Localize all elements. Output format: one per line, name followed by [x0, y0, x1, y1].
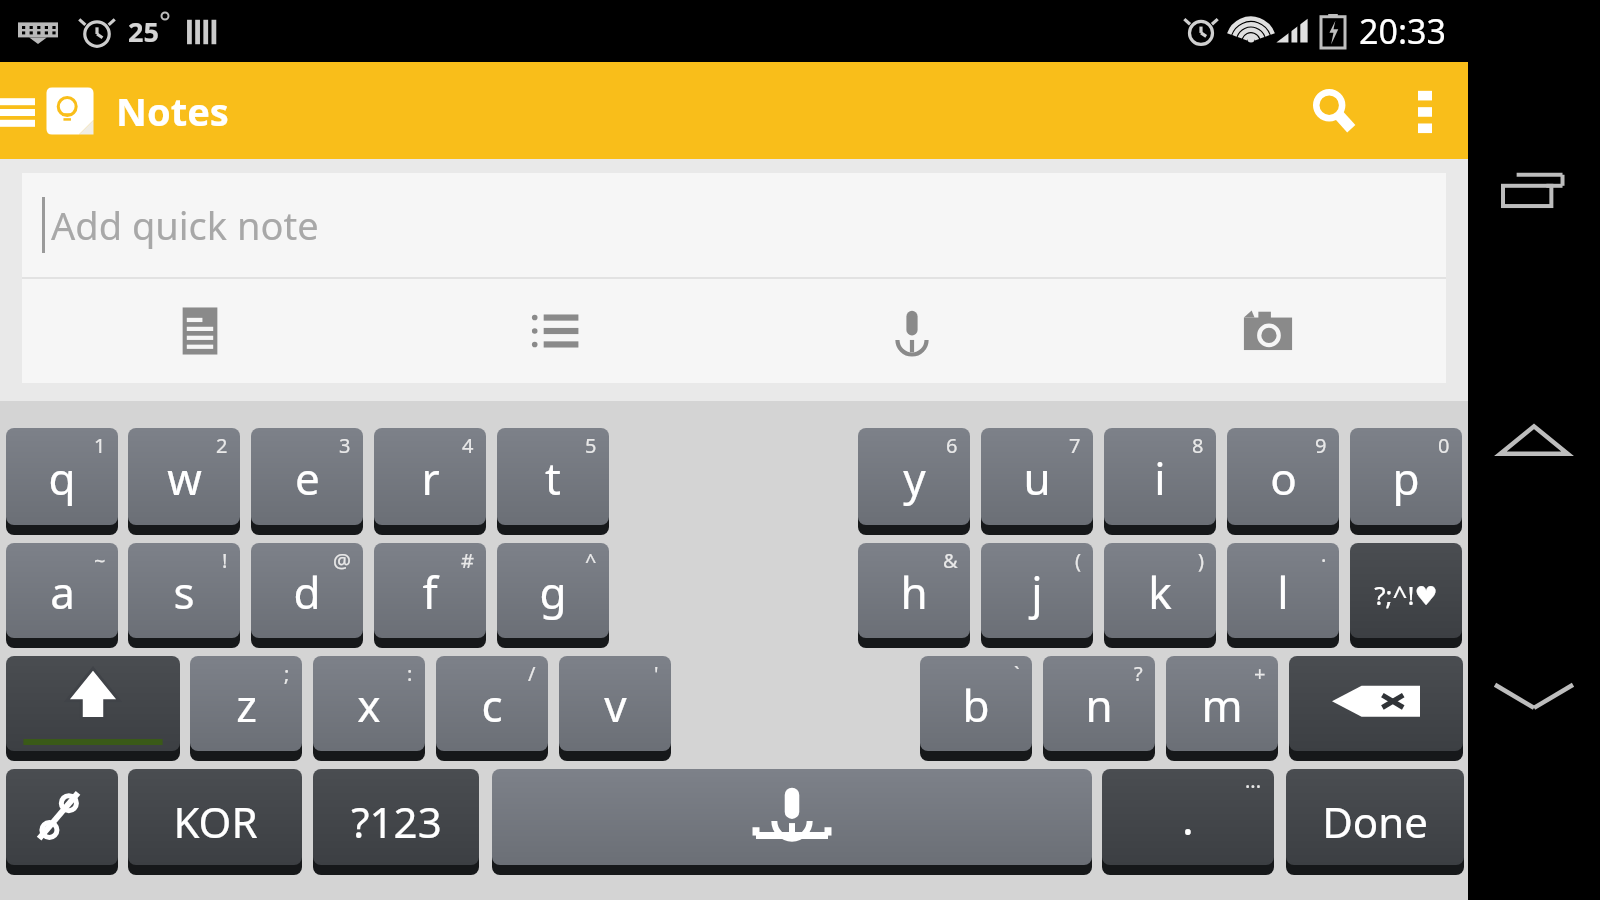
button[interactable]: Add quick note [22, 173, 1446, 277]
staticText: ^ [585, 547, 597, 574]
button[interactable]: Keyboard settings [6, 769, 118, 873]
staticText: KOR [173, 793, 258, 850]
staticText: e [295, 448, 320, 508]
staticText: l [1277, 562, 1289, 622]
button[interactable]: @ [251, 543, 363, 646]
button[interactable]: Recent apps [1479, 140, 1589, 250]
staticText: p [1392, 448, 1420, 508]
staticText: u [1023, 448, 1051, 508]
button[interactable]: + [1166, 656, 1278, 759]
button[interactable]: 6 [858, 428, 970, 533]
staticText: h [900, 562, 928, 622]
staticText: k [1148, 562, 1172, 622]
staticText: w [167, 448, 202, 508]
staticText: ~ [94, 547, 106, 574]
staticText: 4 [462, 432, 474, 459]
staticText: b [962, 675, 990, 735]
staticText: ?;^!♥ [1374, 577, 1438, 612]
staticText: g [539, 562, 567, 622]
button[interactable]: KOR [128, 769, 302, 873]
button[interactable]: 7 [981, 428, 1093, 533]
staticText: Notes [116, 85, 229, 137]
button[interactable]: Open navigation drawer [0, 62, 38, 159]
button[interactable]: 2 [128, 428, 240, 533]
staticText: f [422, 562, 438, 622]
staticText: ? [1134, 660, 1143, 687]
staticText: 9 [1315, 432, 1327, 459]
staticText: z [236, 675, 257, 735]
staticText: s [173, 562, 195, 622]
button[interactable]: Space [492, 769, 1092, 873]
staticText: a [50, 562, 75, 622]
staticText: : [407, 660, 413, 687]
staticText: n [1085, 675, 1113, 735]
button[interactable]: Hide keyboard [1479, 640, 1589, 750]
staticText: + [1254, 660, 1266, 687]
staticText: ( [1075, 547, 1081, 574]
staticText: t [545, 448, 561, 508]
staticText: @ [333, 547, 351, 574]
button[interactable]: ^ [497, 543, 609, 646]
button[interactable]: 9 [1227, 428, 1339, 533]
staticText: ; [284, 660, 290, 687]
button[interactable]: ; [190, 656, 302, 759]
button[interactable]: & [858, 543, 970, 646]
staticText: r [421, 448, 440, 508]
button[interactable]: Home [1479, 385, 1589, 495]
button[interactable]: Photo note [1090, 279, 1446, 383]
button[interactable]: : [313, 656, 425, 759]
staticText: 2 [216, 432, 228, 459]
button[interactable]: ( [981, 543, 1093, 646]
button[interactable]: 0 [1350, 428, 1462, 533]
button[interactable]: 8 [1104, 428, 1216, 533]
button[interactable]: ! [128, 543, 240, 646]
button[interactable]: Checklist [378, 279, 734, 383]
staticText: Done [1322, 793, 1428, 850]
staticText: x [357, 675, 381, 735]
button[interactable]: / [436, 656, 548, 759]
staticText: 25 [128, 13, 159, 50]
button[interactable]: ?;^!♥ [1350, 543, 1462, 646]
staticText: & [943, 547, 958, 574]
staticText: 20:33 [1359, 8, 1446, 54]
staticText: c [481, 675, 503, 735]
staticText: # [461, 547, 474, 574]
staticText: 8 [1192, 432, 1204, 459]
staticText: ··· [1245, 773, 1262, 800]
staticText: o [1270, 448, 1297, 508]
button[interactable]: Voice note [734, 279, 1090, 383]
staticText: ' [654, 660, 659, 687]
staticText: 0 [1438, 432, 1450, 459]
button[interactable]: ?123 [313, 769, 479, 873]
button[interactable]: Text note [22, 279, 378, 383]
button[interactable]: # [374, 543, 486, 646]
staticText: ) [1198, 547, 1204, 574]
staticText: · [1321, 547, 1327, 574]
staticText: 3 [339, 432, 351, 459]
button[interactable]: ~ [6, 543, 118, 646]
button[interactable]: 4 [374, 428, 486, 533]
button[interactable]: 3 [251, 428, 363, 533]
button[interactable]: ) [1104, 543, 1216, 646]
staticText: ?123 [351, 793, 442, 850]
staticText: Add quick note [51, 199, 319, 251]
button[interactable]: Search [1286, 62, 1382, 159]
staticText: 5 [585, 432, 597, 459]
button[interactable]: ' [559, 656, 671, 759]
staticText: 6 [946, 432, 958, 459]
button[interactable]: More options [1382, 62, 1468, 159]
button[interactable]: ` [920, 656, 1032, 759]
button[interactable]: 5 [497, 428, 609, 533]
staticText: i [1154, 448, 1166, 508]
button[interactable]: 1 [6, 428, 118, 533]
button[interactable]: Shift [6, 656, 180, 759]
button[interactable]: Delete [1289, 656, 1463, 759]
button[interactable]: ? [1043, 656, 1155, 759]
button[interactable]: Done [1286, 769, 1464, 873]
button[interactable]: ··· [1102, 769, 1274, 873]
staticText: y [903, 448, 926, 508]
staticText: 7 [1069, 432, 1081, 459]
button[interactable]: · [1227, 543, 1339, 646]
staticText: ! [222, 547, 228, 574]
staticText: m [1201, 675, 1243, 735]
